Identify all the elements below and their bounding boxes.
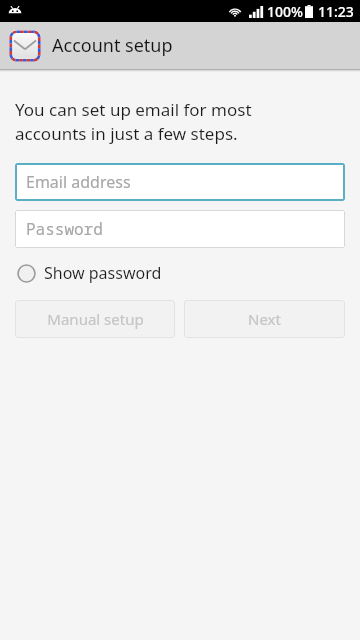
staticText: Account setup xyxy=(52,33,173,58)
button[interactable]: Email address xyxy=(15,163,345,201)
staticText: Next xyxy=(248,309,281,329)
button[interactable]: Password xyxy=(15,210,345,248)
staticText: Email address xyxy=(26,171,131,193)
staticText: Password xyxy=(26,218,103,240)
staticText: Manual setup xyxy=(47,309,144,329)
button[interactable]: Next xyxy=(184,300,345,338)
staticText: 100% xyxy=(267,2,303,21)
staticText: 11:23 xyxy=(318,2,354,21)
staticText: Show password xyxy=(44,262,162,284)
button[interactable]: Manual setup xyxy=(15,300,175,338)
staticText: You can set up email for most accounts i… xyxy=(15,98,252,145)
button[interactable]: Show password xyxy=(15,259,164,287)
